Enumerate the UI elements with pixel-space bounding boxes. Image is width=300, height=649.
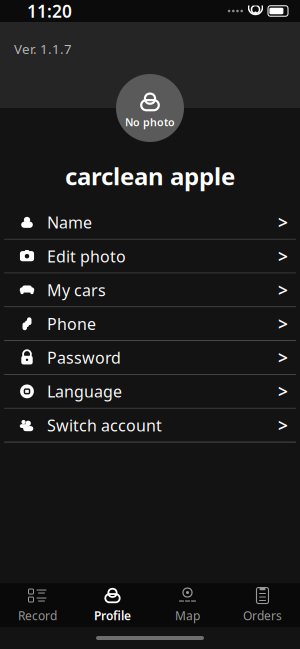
staticText: > [278,414,288,437]
button[interactable]: Switch account [0,409,300,442]
staticText: > [278,312,288,335]
staticText: 11:20 [27,0,72,22]
staticText: My cars [47,279,106,300]
button[interactable]: Orders [225,583,300,627]
staticText: Map [175,607,200,623]
staticText: Language [47,381,122,402]
staticText: > [278,245,288,268]
staticText: > [278,211,288,234]
staticText: Profile [94,607,131,623]
staticText: Ver. 1.1.7 [14,40,72,58]
staticText: > [278,380,288,403]
staticText: carclean apple [65,160,235,192]
staticText: Switch account [47,414,162,436]
staticText: Record [18,607,57,623]
button[interactable]: Name [0,206,300,239]
button[interactable]: Language [0,375,300,408]
button[interactable]: Profile [75,583,150,627]
staticText: Orders [243,607,282,623]
staticText: Password [47,347,121,368]
button[interactable]: Record [0,583,75,627]
button[interactable]: My cars [0,273,300,306]
staticText: Edit photo [47,245,126,267]
staticText: Phone [47,313,96,334]
button[interactable]: Phone [0,307,300,340]
button[interactable]: Password [0,341,300,374]
staticText: > [278,278,288,301]
button[interactable]: Edit photo [0,240,300,273]
button[interactable]: Map [150,583,225,627]
staticText: > [278,346,288,369]
staticText: Name [47,212,92,233]
staticText: No photo [125,115,175,129]
